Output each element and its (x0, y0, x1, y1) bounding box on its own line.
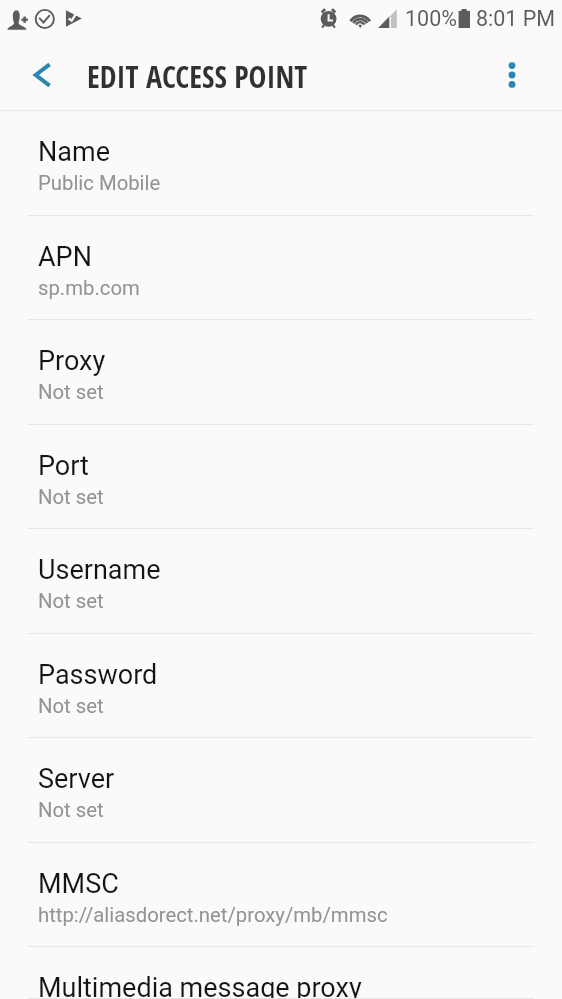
button[interactable]: Port (0, 425, 562, 529)
button[interactable]: Proxy (0, 320, 562, 425)
staticText: 8:01 PM (476, 6, 556, 31)
staticText: MMSC (38, 868, 119, 900)
button[interactable]: MMSC (0, 843, 562, 947)
staticText: Not set (38, 798, 104, 822)
staticText: Not set (38, 380, 104, 404)
staticText: Not set (38, 589, 104, 613)
button[interactable]: Password (0, 634, 562, 738)
staticText: Port (38, 450, 89, 482)
button[interactable]: Navigate up (23, 55, 63, 95)
staticText: Password (38, 659, 158, 691)
staticText: Name (38, 136, 110, 168)
staticText: Not set (38, 694, 104, 718)
staticText: EDIT ACCESS POINT (87, 56, 308, 97)
staticText: Not set (38, 485, 104, 509)
button[interactable]: Server (0, 738, 562, 843)
staticText: sp.mb.com (38, 276, 140, 300)
staticText: Public Mobile (38, 171, 161, 195)
button[interactable]: Username (0, 529, 562, 634)
staticText: APN (38, 241, 92, 273)
button[interactable]: More options (492, 55, 532, 95)
staticText: Server (38, 763, 115, 795)
staticText: http://aliasdorect.net/proxy/mb/mmsc (38, 903, 388, 927)
staticText: Multimedia message proxy (38, 972, 362, 999)
button[interactable]: APN (0, 216, 562, 320)
staticText: 100% (405, 6, 457, 31)
button[interactable]: Multimedia message proxy (0, 947, 562, 999)
button[interactable]: Name (0, 111, 562, 216)
staticText: Proxy (38, 345, 106, 377)
staticText: Username (38, 554, 161, 586)
